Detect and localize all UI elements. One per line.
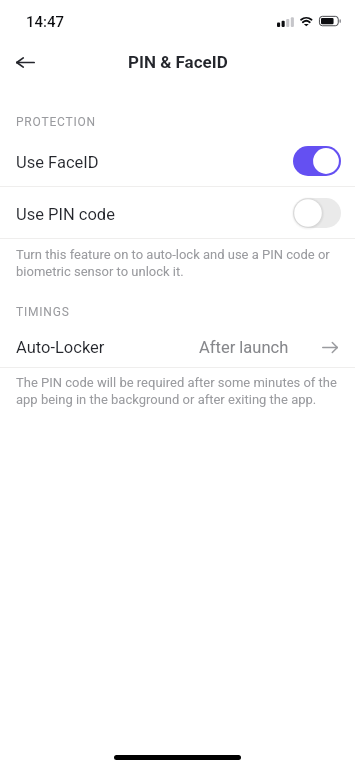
staticText: Use FaceID — [16, 153, 99, 172]
staticText: Turn this feature on to auto-lock and us… — [16, 247, 339, 280]
button[interactable]: Back — [3, 40, 47, 84]
staticText: PROTECTION — [16, 115, 96, 129]
button[interactable]: Use FaceID — [0, 136, 355, 188]
staticText: The PIN code will be required after some… — [16, 375, 339, 408]
button[interactable]: Use PIN code — [0, 188, 355, 240]
staticText: After launch — [199, 338, 289, 357]
button[interactable]: Auto-Locker — [0, 321, 355, 373]
staticText: 14:47 — [26, 13, 65, 31]
staticText: Auto-Locker — [16, 338, 105, 357]
staticText: TIMINGS — [16, 305, 70, 319]
staticText: Use PIN code — [16, 205, 115, 224]
staticText: PIN & FaceID — [128, 52, 228, 72]
